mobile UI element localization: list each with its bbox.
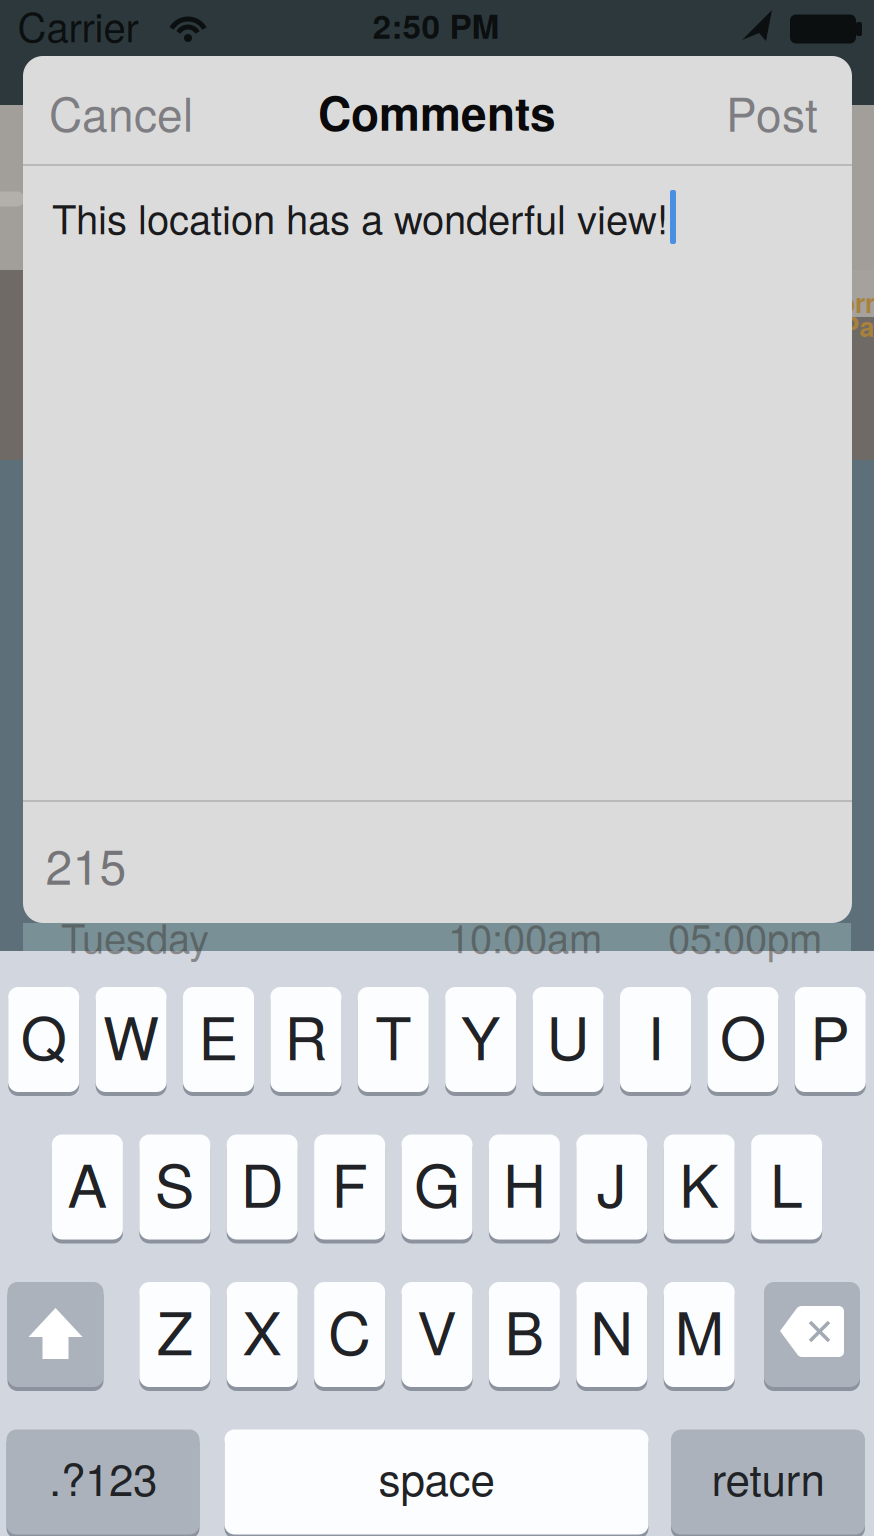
staticText: space bbox=[378, 1445, 494, 1508]
button[interactable]: B bbox=[489, 1280, 560, 1389]
staticText: S bbox=[155, 1139, 195, 1224]
button[interactable]: Z bbox=[139, 1280, 210, 1389]
button[interactable] bbox=[764, 1280, 860, 1389]
button[interactable]: O bbox=[707, 985, 778, 1094]
button[interactable]: N bbox=[576, 1280, 647, 1389]
button[interactable] bbox=[7, 1280, 103, 1389]
staticText: Pa bbox=[841, 307, 874, 345]
button[interactable]: space bbox=[224, 1427, 648, 1536]
button[interactable]: G bbox=[401, 1132, 472, 1241]
staticText: T bbox=[375, 992, 411, 1077]
staticText: 10:00am bbox=[448, 907, 602, 965]
button[interactable]: U bbox=[533, 985, 604, 1094]
staticText: Comments bbox=[318, 79, 556, 145]
staticText: H bbox=[503, 1139, 546, 1224]
button[interactable]: D bbox=[227, 1132, 298, 1241]
staticText: P bbox=[810, 992, 850, 1077]
staticText: U bbox=[547, 992, 590, 1077]
button[interactable]: J bbox=[576, 1132, 647, 1241]
staticText: C bbox=[328, 1287, 371, 1372]
button[interactable]: V bbox=[401, 1280, 472, 1389]
button[interactable]: Y bbox=[445, 985, 516, 1094]
staticText: M bbox=[675, 1287, 724, 1372]
button[interactable]: X bbox=[227, 1280, 298, 1389]
staticText: A bbox=[67, 1139, 107, 1224]
staticText: Tuesday bbox=[61, 907, 209, 965]
staticText: B bbox=[504, 1287, 544, 1372]
button[interactable]: Post bbox=[726, 79, 818, 145]
staticText: K bbox=[679, 1139, 719, 1224]
staticText: O bbox=[720, 992, 766, 1077]
button[interactable]: M bbox=[664, 1280, 735, 1389]
staticText: N bbox=[590, 1287, 633, 1372]
button[interactable]: Q bbox=[8, 985, 79, 1094]
staticText: W bbox=[103, 992, 159, 1077]
staticText: Post bbox=[726, 79, 818, 145]
button[interactable]: A bbox=[52, 1132, 123, 1241]
staticText: 2:50 PM bbox=[372, 1, 499, 49]
staticText: E bbox=[198, 992, 238, 1077]
button[interactable]: L bbox=[751, 1132, 822, 1241]
button[interactable]: .?123 bbox=[6, 1427, 199, 1536]
staticText: return bbox=[711, 1445, 824, 1508]
button[interactable]: W bbox=[96, 985, 167, 1094]
staticText: 05:00pm bbox=[668, 907, 822, 965]
staticText: L bbox=[770, 1139, 803, 1224]
staticText: 215 bbox=[45, 830, 126, 898]
button[interactable]: Cancel bbox=[49, 79, 193, 145]
staticText: I bbox=[647, 992, 663, 1077]
button[interactable]: H bbox=[489, 1132, 560, 1241]
staticText: J bbox=[597, 1139, 627, 1224]
staticText: Cancel bbox=[49, 79, 193, 145]
staticText: G bbox=[414, 1139, 460, 1224]
staticText: F bbox=[332, 1139, 368, 1224]
button[interactable]: R bbox=[270, 985, 341, 1094]
staticText: Z bbox=[157, 1287, 193, 1372]
button[interactable]: return bbox=[671, 1427, 865, 1536]
staticText: X bbox=[242, 1287, 282, 1372]
button[interactable]: C bbox=[314, 1280, 385, 1389]
button[interactable]: S bbox=[139, 1132, 210, 1241]
staticText: Y bbox=[461, 992, 501, 1077]
button[interactable]: T bbox=[358, 985, 429, 1094]
staticText: This location has a wonderful view! bbox=[52, 188, 668, 246]
staticText: Q bbox=[21, 992, 67, 1077]
staticText: V bbox=[417, 1287, 457, 1372]
button[interactable]: K bbox=[664, 1132, 735, 1241]
staticText: D bbox=[241, 1139, 284, 1224]
staticText: orn bbox=[839, 283, 874, 321]
staticText: Carrier bbox=[17, 0, 138, 54]
button[interactable]: E bbox=[183, 985, 254, 1094]
button[interactable]: I bbox=[620, 985, 691, 1094]
button[interactable]: P bbox=[795, 985, 866, 1094]
button[interactable]: F bbox=[314, 1132, 385, 1241]
staticText: R bbox=[284, 992, 327, 1077]
staticText: .?123 bbox=[49, 1445, 157, 1508]
